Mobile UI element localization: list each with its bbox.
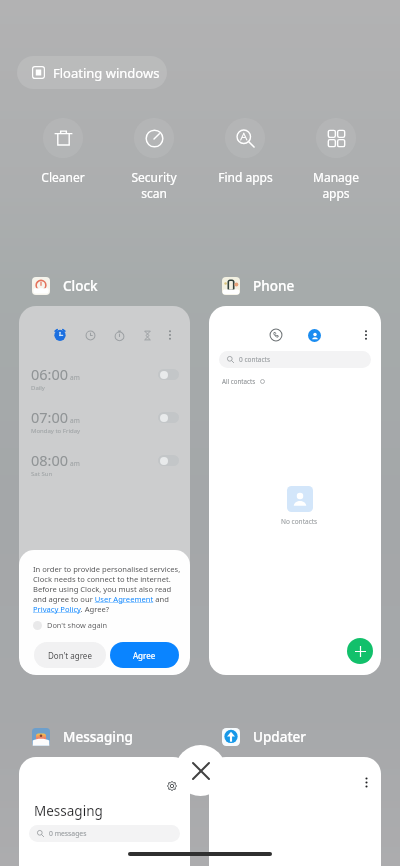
staticText: 06:00 bbox=[31, 364, 69, 384]
button[interactable]: Don't agree bbox=[34, 642, 106, 668]
button[interactable]: Messaging bbox=[32, 727, 133, 747]
staticText: Clock bbox=[63, 277, 98, 295]
staticText: am bbox=[70, 459, 80, 468]
button[interactable]: Security scan bbox=[109, 114, 199, 205]
staticText: No contacts bbox=[281, 517, 318, 526]
button[interactable]: 0 messages bbox=[29, 825, 180, 842]
staticText: Sat Sun bbox=[31, 470, 53, 478]
button[interactable]: Phone bbox=[222, 276, 295, 296]
staticText: Messaging bbox=[63, 728, 133, 746]
staticText: Manage apps bbox=[313, 169, 359, 201]
button[interactable]: Close all apps bbox=[175, 745, 226, 796]
button[interactable]: Cleaner bbox=[18, 114, 108, 189]
staticText: Don't show again bbox=[47, 620, 108, 630]
staticText: 0 messages bbox=[49, 829, 87, 838]
button[interactable]: Recents bbox=[209, 306, 381, 675]
button[interactable]: Recents bbox=[265, 324, 287, 346]
staticText: 07:00 bbox=[31, 407, 69, 427]
staticText: Security scan bbox=[131, 169, 177, 201]
button[interactable]: Toggle alarm bbox=[158, 412, 179, 423]
staticText: 08:00 bbox=[31, 450, 69, 470]
button[interactable]: Floating windows bbox=[17, 56, 167, 89]
staticText: Don't agree bbox=[48, 650, 92, 661]
button[interactable]: Contacts bbox=[308, 329, 321, 342]
staticText: Messaging bbox=[34, 802, 103, 820]
button[interactable]: 0 contacts bbox=[219, 351, 371, 368]
button[interactable]: All contacts bbox=[222, 377, 265, 385]
staticText: Updater bbox=[253, 728, 307, 746]
staticText: In order to provide personalised service… bbox=[33, 564, 183, 614]
button[interactable]: Settings bbox=[164, 778, 180, 794]
staticText: 0 contacts bbox=[239, 355, 271, 364]
button[interactable]: Stopwatch bbox=[108, 324, 130, 346]
button[interactable]: World clock bbox=[79, 324, 101, 346]
button[interactable]: Agree bbox=[110, 642, 179, 668]
button[interactable]: More options bbox=[355, 324, 377, 346]
button[interactable]: Find apps bbox=[200, 114, 290, 189]
staticText: Monday to Friday bbox=[31, 427, 81, 435]
button[interactable]: Timer bbox=[136, 324, 158, 346]
button[interactable]: More options bbox=[159, 324, 181, 346]
button[interactable]: Alarm bbox=[19, 306, 190, 675]
button[interactable]: Clock bbox=[32, 276, 98, 296]
staticText: am bbox=[70, 373, 80, 382]
staticText: Find apps bbox=[218, 169, 273, 185]
button[interactable]: Toggle alarm bbox=[158, 455, 179, 466]
staticText: am bbox=[70, 416, 80, 425]
button[interactable]: More options bbox=[357, 773, 375, 791]
button[interactable]: Add contact bbox=[347, 638, 373, 664]
staticText: Daily bbox=[31, 384, 45, 392]
staticText: Floating windows bbox=[53, 64, 160, 82]
button[interactable]: More options bbox=[209, 757, 381, 866]
button[interactable]: Toggle alarm bbox=[158, 369, 179, 380]
staticText: Phone bbox=[253, 277, 295, 295]
button[interactable]: Manage apps bbox=[291, 114, 381, 205]
staticText: All contacts bbox=[222, 377, 256, 385]
staticText: Agree bbox=[133, 650, 156, 661]
staticText: Cleaner bbox=[41, 169, 85, 185]
button[interactable]: Updater bbox=[222, 727, 307, 747]
button[interactable]: Alarm bbox=[49, 324, 71, 346]
button[interactable]: Settings bbox=[19, 757, 190, 866]
